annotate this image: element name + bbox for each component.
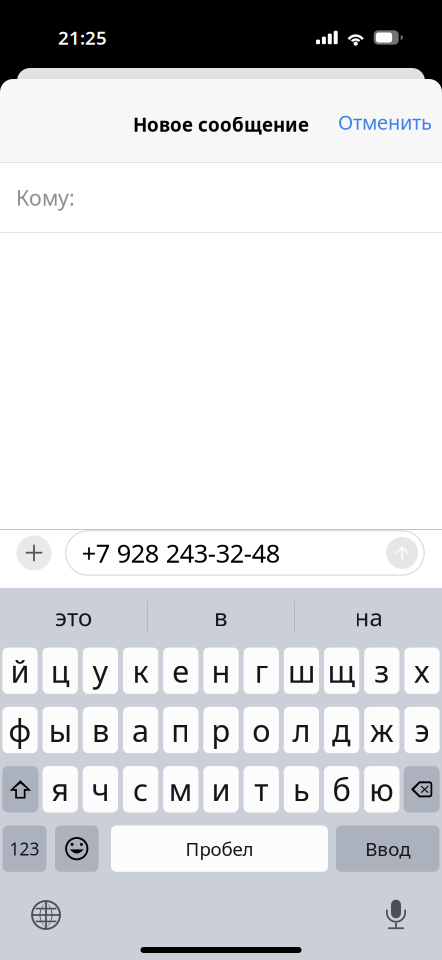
staticText: у — [92, 650, 108, 691]
button[interactable]: т — [243, 766, 279, 812]
button[interactable]: и — [203, 766, 239, 812]
button[interactable]: ф — [2, 707, 38, 753]
button[interactable]: я — [42, 766, 78, 812]
button[interactable]: й — [2, 648, 38, 694]
staticText: д — [332, 710, 351, 750]
button[interactable]: п — [163, 707, 198, 753]
button[interactable]: Next keyboard — [19, 890, 73, 938]
staticText: э — [414, 710, 429, 750]
button[interactable]: к — [123, 648, 158, 694]
button[interactable]: з — [364, 648, 399, 694]
staticText: ы — [49, 710, 72, 750]
button[interactable]: это — [0, 593, 147, 641]
staticText: л — [292, 710, 310, 750]
staticText: ю — [369, 769, 394, 810]
staticText: Кому: — [16, 183, 75, 212]
button[interactable]: ш — [284, 648, 319, 694]
staticText: е — [172, 650, 189, 691]
staticText: и — [211, 769, 230, 810]
staticText: щ — [328, 650, 356, 691]
staticText: на — [354, 601, 382, 633]
staticText: ц — [51, 650, 70, 691]
button[interactable]: Пробел — [111, 825, 328, 872]
button[interactable]: Кому: — [0, 163, 442, 232]
staticText: Новое сообщение — [133, 112, 309, 137]
staticText: н — [211, 650, 230, 691]
button[interactable]: Send — [386, 537, 418, 569]
button[interactable]: Shift — [2, 766, 38, 812]
staticText: к — [133, 650, 149, 691]
button[interactable]: +7 928 243-32-48 — [66, 531, 424, 575]
button[interactable]: Ввод — [336, 825, 439, 872]
staticText: 21:25 — [58, 25, 107, 50]
button[interactable]: ч — [83, 766, 118, 812]
button[interactable]: ю — [364, 766, 399, 812]
button[interactable]: л — [284, 707, 319, 753]
button[interactable]: х — [404, 648, 440, 694]
staticText: с — [133, 769, 148, 810]
button[interactable]: г — [243, 648, 279, 694]
button[interactable]: Emoji keyboard — [55, 825, 98, 872]
button[interactable]: р — [203, 707, 239, 753]
button[interactable]: Add media — [0, 531, 66, 575]
staticText: г — [255, 650, 268, 691]
staticText: х — [414, 650, 430, 691]
staticText: ш — [288, 650, 315, 691]
button[interactable]: о — [243, 707, 279, 753]
button[interactable]: э — [404, 707, 440, 753]
staticText: +7 928 243-32-48 — [82, 536, 280, 570]
button[interactable]: б — [324, 766, 359, 812]
button[interactable]: е — [163, 648, 198, 694]
staticText: Пробел — [185, 836, 253, 861]
button[interactable]: м — [163, 766, 198, 812]
staticText: в — [214, 601, 228, 633]
staticText: ж — [370, 710, 393, 750]
button[interactable]: у — [83, 648, 118, 694]
button[interactable]: д — [324, 707, 359, 753]
staticText: 123 — [9, 837, 39, 860]
staticText: Ввод — [365, 836, 410, 861]
staticText: ь — [293, 769, 310, 810]
button[interactable]: щ — [324, 648, 359, 694]
staticText: ч — [91, 769, 109, 810]
staticText: т — [254, 769, 268, 810]
staticText: это — [55, 601, 92, 633]
button[interactable]: в — [83, 707, 118, 753]
staticText: Отменить — [338, 109, 432, 135]
button[interactable]: н — [203, 648, 239, 694]
staticText: м — [169, 769, 193, 810]
staticText: в — [92, 710, 109, 750]
staticText: п — [171, 710, 190, 750]
button[interactable]: Отменить — [316, 100, 442, 144]
staticText: ф — [8, 710, 31, 750]
button[interactable]: с — [123, 766, 158, 812]
staticText: з — [374, 650, 389, 691]
staticText: б — [333, 769, 351, 810]
staticText: й — [10, 650, 29, 691]
staticText: о — [252, 710, 270, 750]
button[interactable]: на — [295, 593, 442, 641]
staticText: я — [51, 769, 69, 810]
button[interactable]: ь — [284, 766, 319, 812]
button[interactable]: ц — [42, 648, 78, 694]
button[interactable]: Delete — [404, 766, 440, 812]
staticText: р — [211, 710, 230, 750]
button[interactable]: в — [148, 593, 294, 641]
button[interactable]: ж — [364, 707, 399, 753]
button[interactable]: Dictation — [369, 891, 423, 937]
button[interactable]: ы — [42, 707, 78, 753]
staticText: а — [132, 710, 149, 750]
button[interactable]: 123 — [2, 825, 46, 872]
button[interactable]: а — [123, 707, 158, 753]
